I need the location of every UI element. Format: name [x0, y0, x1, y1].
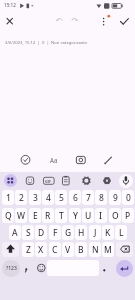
- button[interactable]: P: [122, 208, 134, 223]
- button[interactable]: 1: [2, 190, 14, 205]
- staticText: I: [99, 210, 103, 222]
- button[interactable]: [101, 152, 116, 167]
- staticText: 8: [99, 192, 104, 204]
- button[interactable]: ?123: [2, 260, 20, 277]
- button[interactable]: [46, 152, 61, 167]
- button[interactable]: 5: [55, 190, 67, 205]
- button[interactable]: [116, 242, 133, 257]
- button[interactable]: 9: [109, 190, 121, 205]
- staticText: B: [78, 244, 84, 256]
- button[interactable]: S: [22, 225, 34, 240]
- staticText: N: [92, 244, 99, 256]
- staticText: GIF: [45, 179, 51, 184]
- staticText: Q: [5, 210, 12, 222]
- button[interactable]: T: [55, 208, 67, 223]
- button[interactable]: D: [35, 225, 47, 240]
- button[interactable]: 2: [15, 190, 27, 205]
- button[interactable]: G: [62, 225, 74, 240]
- button[interactable]: Z: [22, 242, 34, 257]
- staticText: T: [59, 210, 64, 222]
- button[interactable]: [116, 260, 133, 277]
- staticText: M: [104, 244, 112, 256]
- button[interactable]: [98, 15, 110, 27]
- button[interactable]: 0: [122, 190, 134, 205]
- button[interactable]: V: [62, 242, 74, 257]
- staticText: C: [52, 244, 58, 256]
- button[interactable]: X: [35, 242, 47, 257]
- staticText: 0: [126, 192, 131, 204]
- button[interactable]: U: [82, 208, 94, 223]
- staticText: D: [38, 227, 45, 239]
- staticText: Y: [73, 210, 78, 222]
- staticText: 3: [33, 192, 38, 204]
- button[interactable]: [33, 260, 45, 276]
- staticText: 4: [46, 192, 51, 204]
- staticText: A: [12, 227, 18, 239]
- button[interactable]: N: [89, 242, 101, 257]
- button[interactable]: E: [29, 208, 41, 223]
- staticText: J: [94, 227, 97, 239]
- staticText: P: [125, 210, 131, 222]
- button[interactable]: [18, 152, 33, 167]
- button[interactable]: 3: [29, 190, 41, 205]
- button[interactable]: Y: [69, 208, 81, 223]
- staticText: ?123: [6, 265, 17, 272]
- button[interactable]: [21, 259, 33, 275]
- staticText: 2: [19, 192, 24, 204]
- button[interactable]: K: [102, 225, 114, 240]
- button[interactable]: [4, 15, 16, 27]
- button[interactable]: H: [75, 225, 87, 240]
- button[interactable]: R: [42, 208, 54, 223]
- staticText: K: [105, 227, 111, 239]
- button[interactable]: [73, 152, 88, 167]
- staticText: L: [119, 227, 124, 239]
- staticText: S: [26, 227, 31, 239]
- button[interactable]: [119, 174, 133, 188]
- button[interactable]: Q: [2, 208, 14, 223]
- staticText: 1: [6, 192, 11, 204]
- staticText: V: [65, 244, 71, 256]
- staticText: 9: [113, 192, 118, 204]
- staticText: 3/6/2023, 15:12 | 0 | Non categorizzato: [5, 40, 87, 46]
- staticText: 5: [59, 192, 64, 204]
- staticText: F: [53, 227, 58, 239]
- button[interactable]: 7: [82, 190, 94, 205]
- staticText: 6: [73, 192, 78, 204]
- button[interactable]: I: [95, 208, 107, 223]
- button[interactable]: [4, 174, 17, 187]
- staticText: U: [85, 210, 92, 222]
- button[interactable]: [99, 258, 111, 274]
- button[interactable]: J: [89, 225, 101, 240]
- staticText: E: [33, 210, 38, 222]
- staticText: G: [65, 227, 72, 239]
- staticText: R: [45, 210, 51, 222]
- button[interactable]: A: [9, 225, 21, 240]
- staticText: X: [38, 244, 44, 256]
- staticText: H: [78, 227, 85, 239]
- button[interactable]: [54, 15, 66, 27]
- staticText: 7: [86, 192, 91, 204]
- button[interactable]: W: [15, 208, 27, 223]
- button[interactable]: 8: [95, 190, 107, 205]
- button[interactable]: L: [115, 225, 127, 240]
- staticText: Aa: [50, 156, 58, 164]
- button[interactable]: 6: [69, 190, 81, 205]
- staticText: O: [112, 210, 119, 222]
- button[interactable]: [2, 242, 19, 257]
- button[interactable]: O: [109, 208, 121, 223]
- button[interactable]: C: [49, 242, 61, 257]
- button[interactable]: B: [75, 242, 87, 257]
- button[interactable]: M: [102, 242, 114, 257]
- staticText: Z: [26, 244, 31, 256]
- button[interactable]: [119, 15, 131, 27]
- button[interactable]: 4: [42, 190, 54, 205]
- staticText: W: [17, 210, 25, 222]
- staticText: 15:12: [4, 2, 16, 8]
- button[interactable]: F: [49, 225, 61, 240]
- button[interactable]: [69, 15, 81, 27]
